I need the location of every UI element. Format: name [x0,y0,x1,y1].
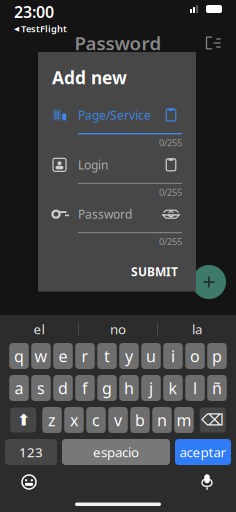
staticText: r [81,345,88,367]
staticText: a [14,377,23,399]
button[interactable]: m [174,407,194,433]
staticText: n [157,409,167,431]
staticText: no [110,320,126,338]
staticText: espacio [93,443,139,461]
button[interactable]: Log out [200,30,226,56]
staticText: x [70,409,78,431]
staticText: s [37,377,45,399]
staticText: g [102,377,112,399]
button[interactable]: ñ [207,375,227,401]
staticText: 0/255 [159,136,182,149]
button[interactable]: e [53,343,73,369]
staticText: f [82,377,88,399]
button[interactable]: g [97,375,117,401]
button[interactable]: l [185,375,205,401]
staticText: l [193,377,197,399]
staticText: Add new [52,66,127,89]
button[interactable]: h [119,375,139,401]
button[interactable]: p [207,343,227,369]
button[interactable]: t [97,343,117,369]
staticText: e [58,345,67,367]
staticText: z [48,409,56,431]
staticText: 123 [19,443,43,461]
staticText: t [104,345,110,367]
button[interactable]: q [9,343,29,369]
button[interactable]: Shift [10,407,36,432]
button[interactable]: b [130,407,150,433]
staticText: d [58,377,68,399]
staticText: k [168,377,177,399]
button[interactable]: aceptar [175,439,231,465]
button[interactable]: 123 [5,439,57,465]
staticText: TestFlight [21,22,67,35]
button[interactable]: c [86,407,106,433]
staticText: Password [78,206,132,222]
button[interactable]: j [141,375,161,401]
button[interactable]: v [108,407,128,433]
button[interactable]: d [53,375,73,401]
button[interactable]: u [141,343,161,369]
staticText: m [176,409,191,431]
staticText: w [34,345,47,367]
staticText: p [212,345,222,367]
button[interactable]: el [0,315,78,343]
staticText: Login [78,157,108,173]
staticText: y [125,345,133,367]
staticText: j [149,377,153,399]
button[interactable]: f [75,375,95,401]
staticText: u [146,345,156,367]
button[interactable]: SUBMIT [127,260,182,283]
button[interactable]: espacio [62,439,170,465]
staticText: q [14,345,24,367]
button[interactable]: o [185,343,205,369]
button[interactable]: no [79,315,157,343]
button[interactable]: la [158,315,236,343]
button[interactable]: z [42,407,62,433]
button[interactable]: Emoji [14,469,44,495]
staticText: el [33,320,44,338]
button[interactable]: w [31,343,51,369]
staticText: 0/255 [159,235,182,248]
button[interactable]: Paste Page/Service [160,105,182,125]
staticText: ñ [212,377,222,399]
staticText: 23:00 [14,1,54,22]
button[interactable]: Add [192,265,226,299]
staticText: la [192,320,202,338]
button[interactable]: k [163,375,183,401]
staticText: ⬆ [17,411,30,429]
staticText: o [190,345,200,367]
staticText: aceptar [179,443,226,461]
button[interactable]: i [163,343,183,369]
button[interactable]: r [75,343,95,369]
button[interactable]: x [64,407,84,433]
staticText: Page/Service [78,107,151,123]
staticText: v [114,409,122,431]
button[interactable]: n [152,407,172,433]
staticText: c [92,409,100,431]
button[interactable]: Paste Password [160,204,182,224]
staticText: i [171,345,175,367]
button[interactable]: y [119,343,139,369]
staticText: h [124,377,134,399]
button[interactable]: a [9,375,29,401]
staticText: ◀ [14,25,19,32]
staticText: ⌫ [201,411,224,429]
staticText: Password [74,31,161,55]
button[interactable]: Delete [200,407,226,432]
staticText: SUBMIT [131,264,178,279]
staticText: b [135,409,145,431]
staticText: 0/255 [159,186,182,198]
button[interactable]: Dictate [192,469,222,495]
button[interactable]: s [31,375,51,401]
button[interactable]: Paste Login [160,155,182,175]
